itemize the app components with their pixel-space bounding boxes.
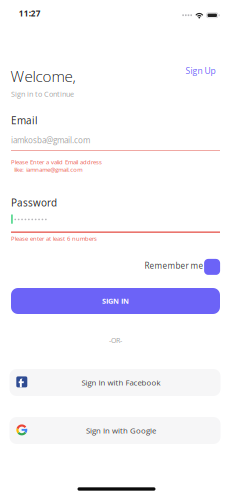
staticText: Please enter at least 6 numbers [11, 234, 97, 242]
staticText: SIGN IN [102, 296, 129, 306]
staticText: Sign In with Facebook [81, 377, 160, 388]
staticText: iamkosba@gmail.com [11, 135, 90, 145]
staticText: Sign in to Continue [11, 89, 74, 99]
staticText: Remember me [145, 260, 204, 271]
button[interactable]: Remember me [145, 258, 223, 276]
staticText: Sign Up [185, 65, 215, 76]
staticText: like: iamname@gmail.com [14, 165, 82, 173]
button[interactable]: Sign In with Google [9, 417, 220, 444]
staticText: Email [11, 113, 38, 127]
button[interactable]: Sign Up [179, 63, 221, 79]
staticText: 11:27 [19, 8, 41, 19]
staticText: Please Enter a valid Email address [11, 158, 102, 166]
button[interactable]: SIGN IN [11, 288, 220, 314]
staticText: Password [11, 196, 57, 209]
button[interactable]: Sign In with Facebook [9, 369, 220, 396]
staticText: -OR- [109, 335, 122, 345]
staticText: Sign In with Google [86, 425, 156, 436]
staticText: Welcome, [11, 66, 76, 86]
